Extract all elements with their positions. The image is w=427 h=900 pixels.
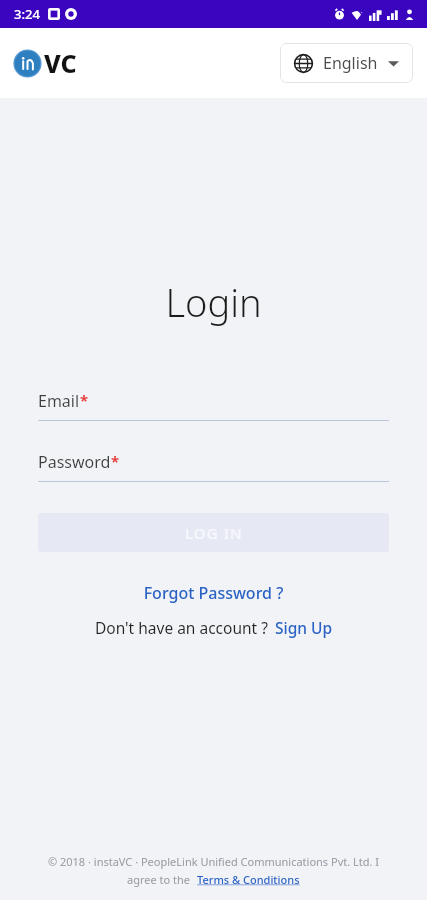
staticText: VC <box>44 46 77 80</box>
button[interactable]: Email <box>38 390 389 421</box>
button[interactable]: English <box>280 43 413 83</box>
staticText: Terms & Conditions <box>197 872 300 887</box>
staticText: Login <box>0 276 427 328</box>
staticText: Sign Up <box>275 617 333 638</box>
staticText: Don't have an account ? <box>95 617 268 638</box>
staticText: * <box>111 451 120 471</box>
button[interactable]: Terms & Conditions <box>197 872 300 887</box>
button[interactable]: Sign Up <box>275 617 333 638</box>
staticText: Password <box>38 451 111 473</box>
staticText: Email <box>38 390 80 412</box>
button[interactable]: Forgot Password ? <box>0 580 427 606</box>
staticText: © 2018 · instaVC · PeopleLink Unified Co… <box>0 854 427 869</box>
staticText: * <box>80 390 89 410</box>
button[interactable]: Password <box>38 451 389 482</box>
staticText: agree to the <box>127 872 190 887</box>
staticText: LOG IN <box>185 523 243 543</box>
staticText: English <box>323 52 378 74</box>
staticText: 3:24 <box>14 5 40 23</box>
